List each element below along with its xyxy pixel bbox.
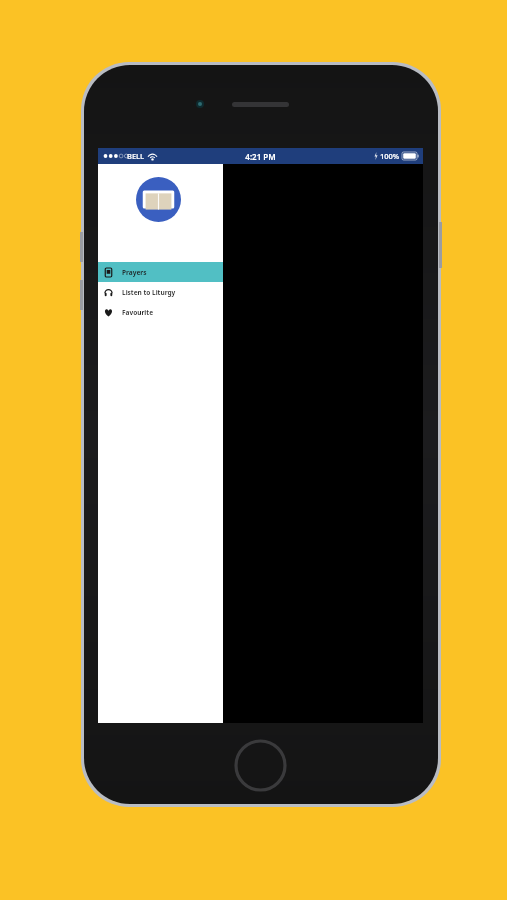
staticText: Favourite bbox=[122, 308, 154, 317]
button[interactable]: App logo bbox=[136, 177, 181, 222]
staticText: BELL bbox=[127, 151, 145, 161]
button[interactable]: Home bbox=[234, 739, 287, 792]
staticText: Prayers bbox=[122, 268, 147, 277]
staticText: 100% bbox=[380, 151, 400, 161]
staticText: 4:21 PM bbox=[245, 151, 276, 162]
button[interactable]: Prayers bbox=[98, 262, 223, 282]
staticText: Listen to Liturgy bbox=[122, 288, 176, 297]
button[interactable]: Listen to Liturgy bbox=[98, 282, 223, 302]
button[interactable]: Favourite bbox=[98, 302, 223, 322]
